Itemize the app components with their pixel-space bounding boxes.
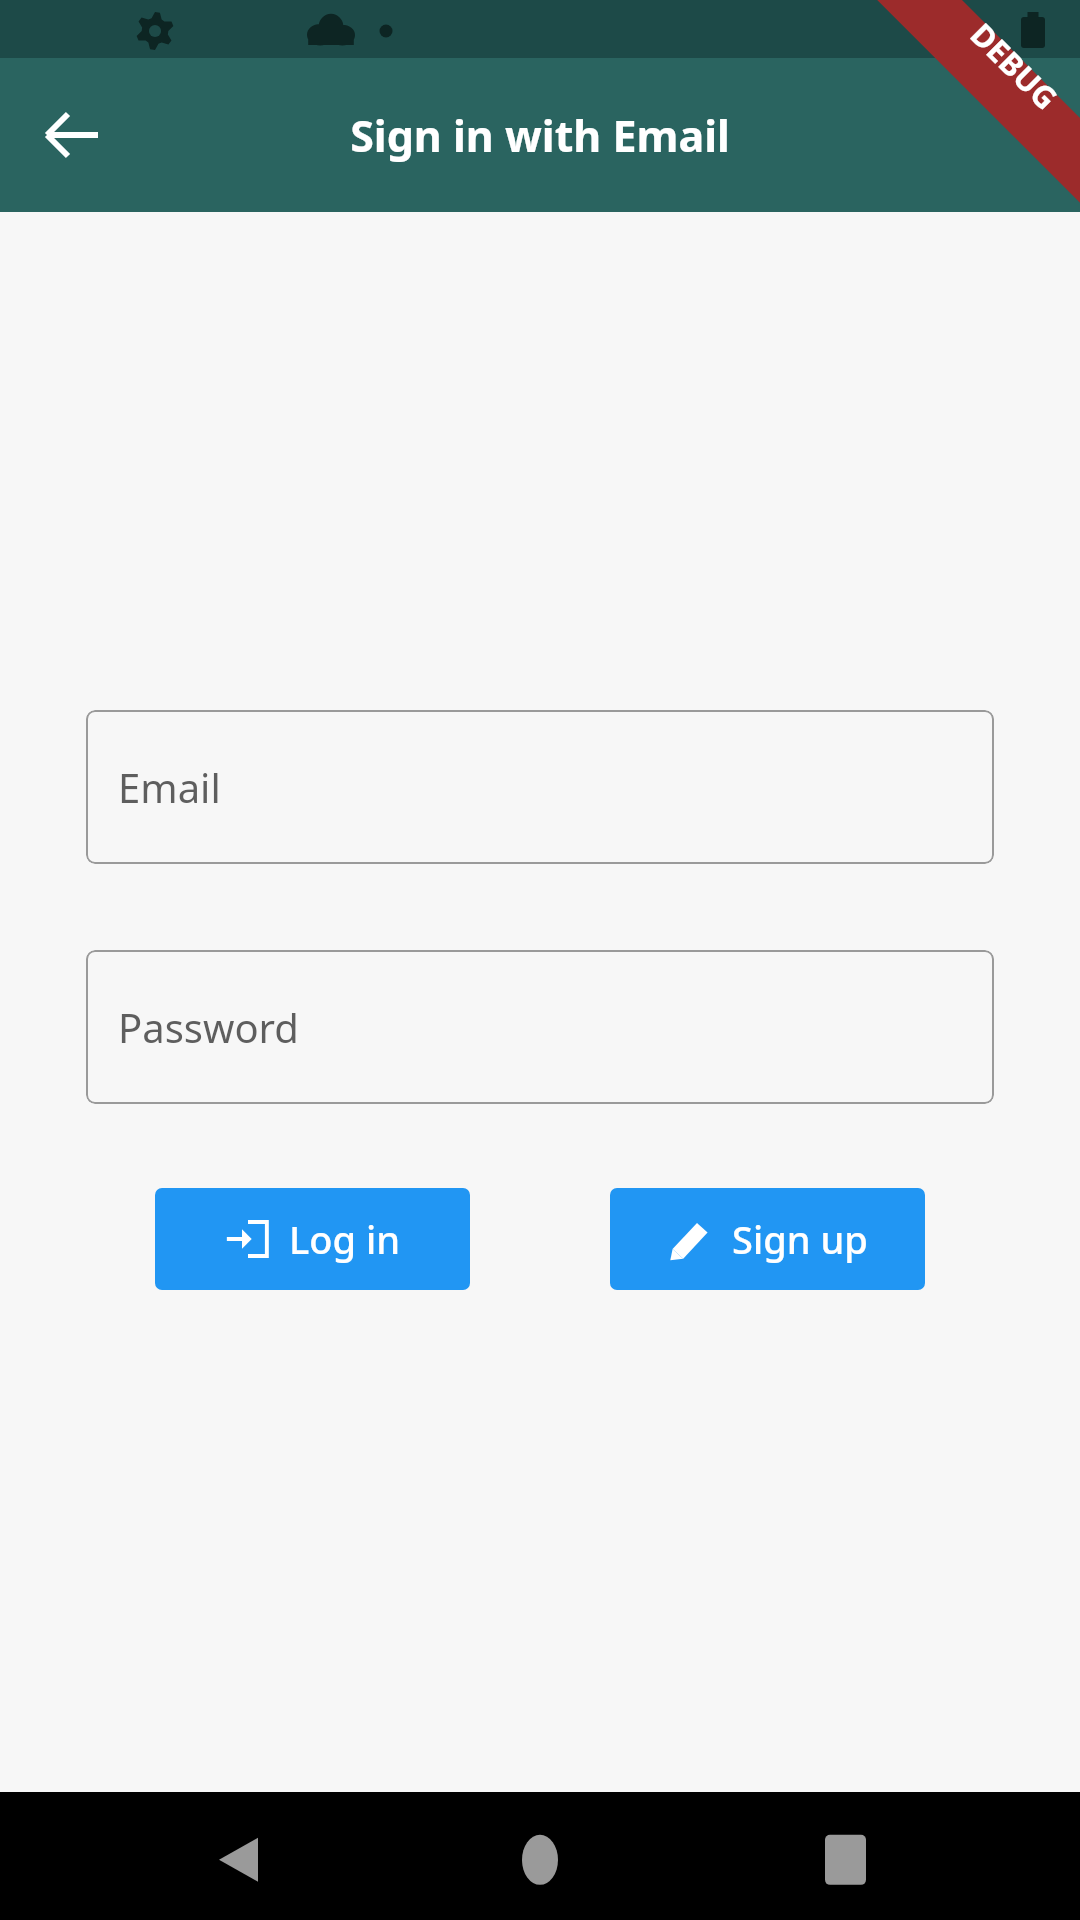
staticText: DEBUG [962,13,1067,119]
staticText: Sign in with Email [350,106,730,165]
button[interactable]: Sign up [610,1188,925,1290]
button[interactable]: Log in [155,1188,470,1290]
staticText: Sign up [732,1213,868,1265]
button[interactable]: Password [86,950,994,1104]
button[interactable]: Back [174,1792,302,1920]
button[interactable]: Navigate up [20,82,126,188]
button[interactable]: Recent apps [782,1792,910,1920]
button[interactable]: Email [86,710,994,864]
staticText: Password [118,1000,299,1054]
staticText: Email [118,760,221,814]
button[interactable]: Home [476,1792,604,1920]
staticText: Log in [289,1213,401,1265]
